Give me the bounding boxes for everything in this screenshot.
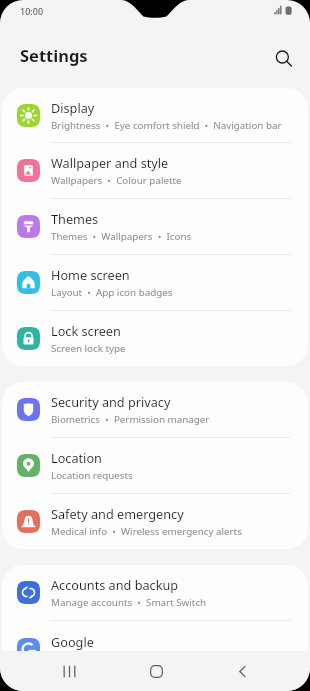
button[interactable]: Wallpaper and style <box>2 143 308 198</box>
button[interactable]: Recents <box>47 651 91 691</box>
staticText: Home screen <box>51 266 130 283</box>
button[interactable]: Themes <box>2 199 308 254</box>
button[interactable]: Search <box>265 40 301 76</box>
staticText: Accounts and backup <box>51 576 179 593</box>
staticText: Wallpaper and style <box>51 154 169 171</box>
button[interactable]: Home screen <box>2 255 308 310</box>
staticText: Themes • Wallpapers • Icons <box>51 230 192 243</box>
button[interactable]: Location <box>2 438 308 493</box>
button[interactable]: Safety and emergency <box>2 494 308 549</box>
staticText: Google <box>51 633 94 650</box>
staticText: Security and privacy <box>51 393 171 410</box>
button[interactable]: Lock screen <box>2 311 308 366</box>
staticText: Biometrics • Permission manager <box>51 413 210 426</box>
staticText: Display <box>51 99 95 116</box>
staticText: Manage accounts • Smart Switch <box>51 596 207 609</box>
button[interactable]: Back <box>220 651 264 691</box>
staticText: Medical info • Wireless emergency alerts <box>51 525 242 538</box>
button[interactable]: Google <box>2 621 308 677</box>
staticText: Lock screen <box>51 322 121 339</box>
button[interactable]: Display <box>2 88 308 142</box>
staticText: Themes <box>51 210 99 227</box>
staticText: Settings <box>20 44 88 66</box>
button[interactable]: Security and privacy <box>2 382 308 437</box>
button[interactable]: Accounts and backup <box>2 565 308 620</box>
button[interactable]: Home <box>134 651 178 691</box>
staticText: Location requests <box>51 469 133 482</box>
staticText: Brightness • Eye comfort shield • Naviga… <box>51 119 282 132</box>
staticText: Location <box>51 449 102 466</box>
staticText: Wallpapers • Colour palette <box>51 174 182 187</box>
staticText: 10:00 <box>20 5 44 17</box>
staticText: Safety and emergency <box>51 505 184 522</box>
staticText: Screen lock type <box>51 342 126 355</box>
staticText: Layout • App icon badges <box>51 286 173 299</box>
